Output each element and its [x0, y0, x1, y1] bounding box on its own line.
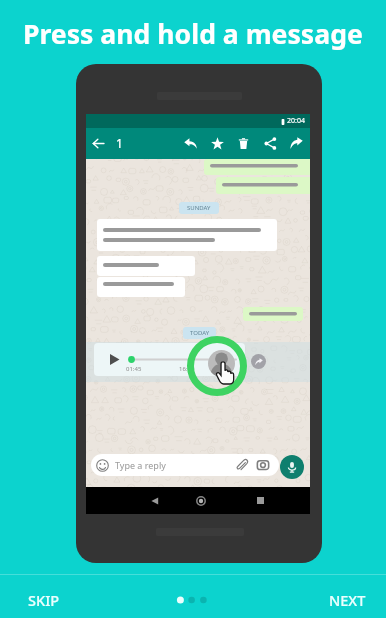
button[interactable]: Forward	[285, 128, 307, 159]
button[interactable]: Share	[259, 128, 281, 159]
button[interactable]: Back	[88, 128, 108, 159]
button[interactable]: Voice message	[280, 455, 304, 479]
staticText: 20:04	[287, 116, 305, 126]
button[interactable]: Type a reply	[91, 454, 279, 476]
button[interactable]: Delete	[232, 128, 254, 159]
staticText: 1	[116, 135, 123, 151]
staticText: TODAY	[190, 329, 210, 337]
button[interactable]: Back	[142, 487, 168, 514]
staticText: Type a reply	[115, 459, 166, 471]
staticText: Press and hold a message	[23, 16, 363, 52]
button[interactable]: Home	[188, 487, 214, 514]
button[interactable]: Recents	[247, 487, 273, 514]
button[interactable]: Star	[206, 128, 228, 159]
staticText: NEXT	[329, 590, 366, 610]
button[interactable]: SKIP	[16, 580, 72, 618]
staticText: 16:00	[179, 365, 195, 373]
staticText: 01:45	[126, 365, 142, 373]
button[interactable]: Reply	[179, 128, 201, 159]
staticText: SKIP	[28, 590, 60, 610]
button[interactable]: NEXT	[317, 580, 378, 618]
staticText: SUNDAY	[187, 204, 211, 212]
